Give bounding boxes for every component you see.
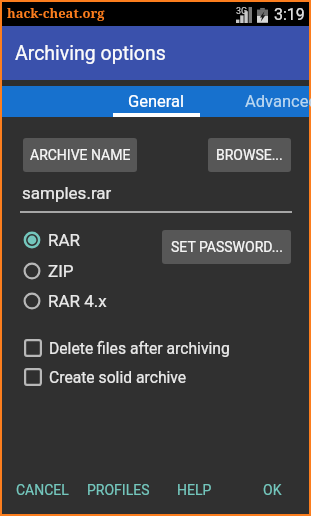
button[interactable]: CANCEL <box>8 476 77 504</box>
staticText: General <box>128 92 185 111</box>
staticText: HELP <box>177 482 212 498</box>
button[interactable]: Delete files after archiving <box>2 336 309 360</box>
staticText: PROFILES <box>87 482 150 498</box>
button[interactable]: BROWSE... <box>208 138 291 172</box>
button[interactable]: SET PASSWORD... <box>162 230 291 264</box>
staticText: SET PASSWORD... <box>171 239 283 255</box>
button[interactable]: ZIP <box>2 258 309 283</box>
staticText: RAR <box>48 230 81 250</box>
other: Mobile signal 3G <box>236 7 252 23</box>
staticText: RAR 4.x <box>48 291 107 311</box>
staticText: hack-cheat.org <box>7 4 105 22</box>
button[interactable]: Create solid archive <box>2 365 309 389</box>
button[interactable]: OK <box>255 476 290 504</box>
staticText: CANCEL <box>16 482 69 498</box>
button[interactable]: General <box>113 86 200 117</box>
staticText: 3:19 <box>274 5 305 24</box>
button[interactable]: RAR 4.x <box>2 288 309 313</box>
staticText: Delete files after archiving <box>49 339 230 357</box>
staticText: Archiving options <box>15 42 166 65</box>
staticText: BROWSE... <box>216 147 283 163</box>
staticText: OK <box>263 482 282 498</box>
other: Battery charging <box>257 7 268 23</box>
staticText: samples.rar <box>22 183 112 203</box>
button[interactable]: RAR <box>2 227 309 252</box>
staticText: ZIP <box>48 261 74 281</box>
staticText: 3G <box>236 6 248 17</box>
staticText: Create solid archive <box>49 368 187 386</box>
staticText: Advanced <box>245 92 311 111</box>
button[interactable]: Advanced <box>200 86 311 117</box>
button[interactable]: ARCHIVE NAME <box>23 138 137 172</box>
button[interactable]: PROFILES <box>79 476 158 504</box>
staticText: ARCHIVE NAME <box>30 147 131 163</box>
button[interactable]: HELP <box>169 476 220 504</box>
